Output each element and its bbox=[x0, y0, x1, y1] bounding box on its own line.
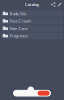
button[interactable]: Fragrance bbox=[1, 32, 63, 39]
staticText: Face Cream bbox=[10, 18, 32, 24]
button[interactable]: Body Oils bbox=[1, 10, 63, 17]
staticText: Fragrance bbox=[10, 33, 28, 38]
button[interactable]: Face Cream bbox=[1, 18, 63, 24]
staticText: Catalog bbox=[24, 2, 39, 7]
button[interactable]: Add bbox=[27, 86, 34, 93]
button[interactable]: Hair Care bbox=[1, 25, 63, 32]
staticText: Hair Care bbox=[10, 26, 28, 31]
staticText: Body Oils bbox=[10, 11, 27, 16]
button[interactable]: Edit bbox=[57, 2, 62, 7]
button[interactable]: Share bbox=[51, 2, 56, 7]
button[interactable]: Record bbox=[38, 91, 50, 96]
